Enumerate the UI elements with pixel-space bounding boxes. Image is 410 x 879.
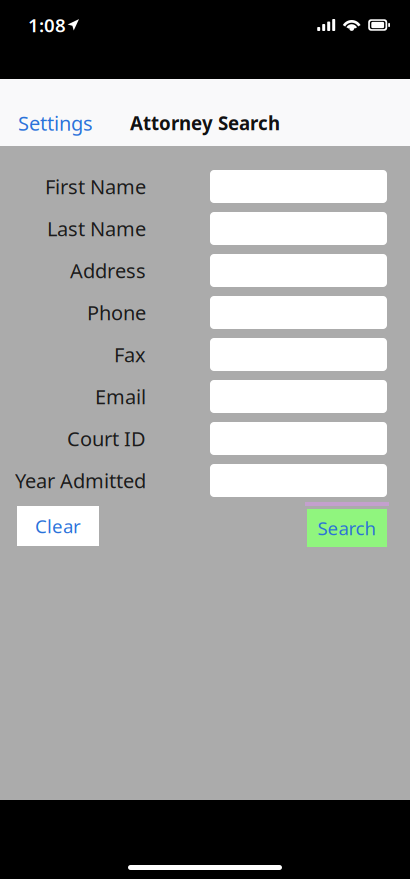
staticText: Settings [18,110,93,136]
staticText: Fax [114,341,146,368]
textField[interactable]: Year Admitted [210,464,387,497]
staticText: First Name [45,173,146,200]
textField[interactable]: Email [210,380,387,413]
button[interactable]: Settings [14,106,97,140]
textField[interactable]: Phone [210,296,387,329]
textField[interactable]: Address [210,254,387,287]
staticText: Clear [35,514,81,538]
staticText: 1:08 [28,13,66,37]
staticText: Phone [87,299,146,326]
staticText: Attorney Search [130,111,280,135]
staticText: Email [95,383,146,410]
button[interactable]: Search [305,500,389,547]
staticText: Year Admitted [15,467,146,494]
staticText: Court ID [67,425,146,452]
button[interactable]: Clear [17,500,99,546]
staticText: Search [317,516,376,540]
textField[interactable]: Last Name [210,212,387,245]
textField[interactable]: First Name [210,170,387,203]
textField[interactable]: Court ID [210,422,387,455]
staticText: Address [70,257,146,284]
textField[interactable]: Fax [210,338,387,371]
staticText: Last Name [47,215,146,242]
